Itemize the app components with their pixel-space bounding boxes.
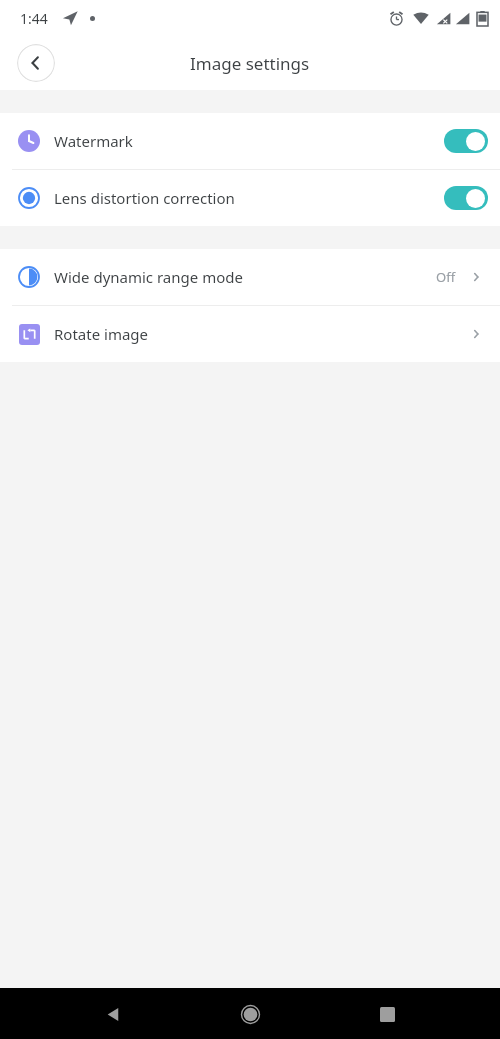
button[interactable]: Wide dynamic range mode	[0, 249, 500, 305]
button[interactable]: Back	[17, 44, 55, 82]
staticText: Rotate image	[54, 324, 468, 344]
button[interactable]: Rotate image	[0, 306, 500, 362]
staticText: Lens distortion correction	[54, 188, 444, 208]
button[interactable]: Lens distortion correction	[0, 170, 500, 226]
staticText: Image settings	[190, 52, 310, 75]
button[interactable]: Home	[226, 990, 274, 1038]
staticText: 1:44	[20, 9, 48, 28]
button[interactable]: Back	[89, 990, 137, 1038]
staticText: Watermark	[54, 131, 444, 151]
button[interactable]: Watermark	[0, 113, 500, 169]
staticText: Wide dynamic range mode	[54, 267, 436, 287]
button[interactable]: Recent apps	[363, 990, 411, 1038]
button[interactable]: Toggle	[444, 186, 488, 210]
button[interactable]: Toggle	[444, 129, 488, 153]
staticText: Off	[436, 268, 456, 286]
